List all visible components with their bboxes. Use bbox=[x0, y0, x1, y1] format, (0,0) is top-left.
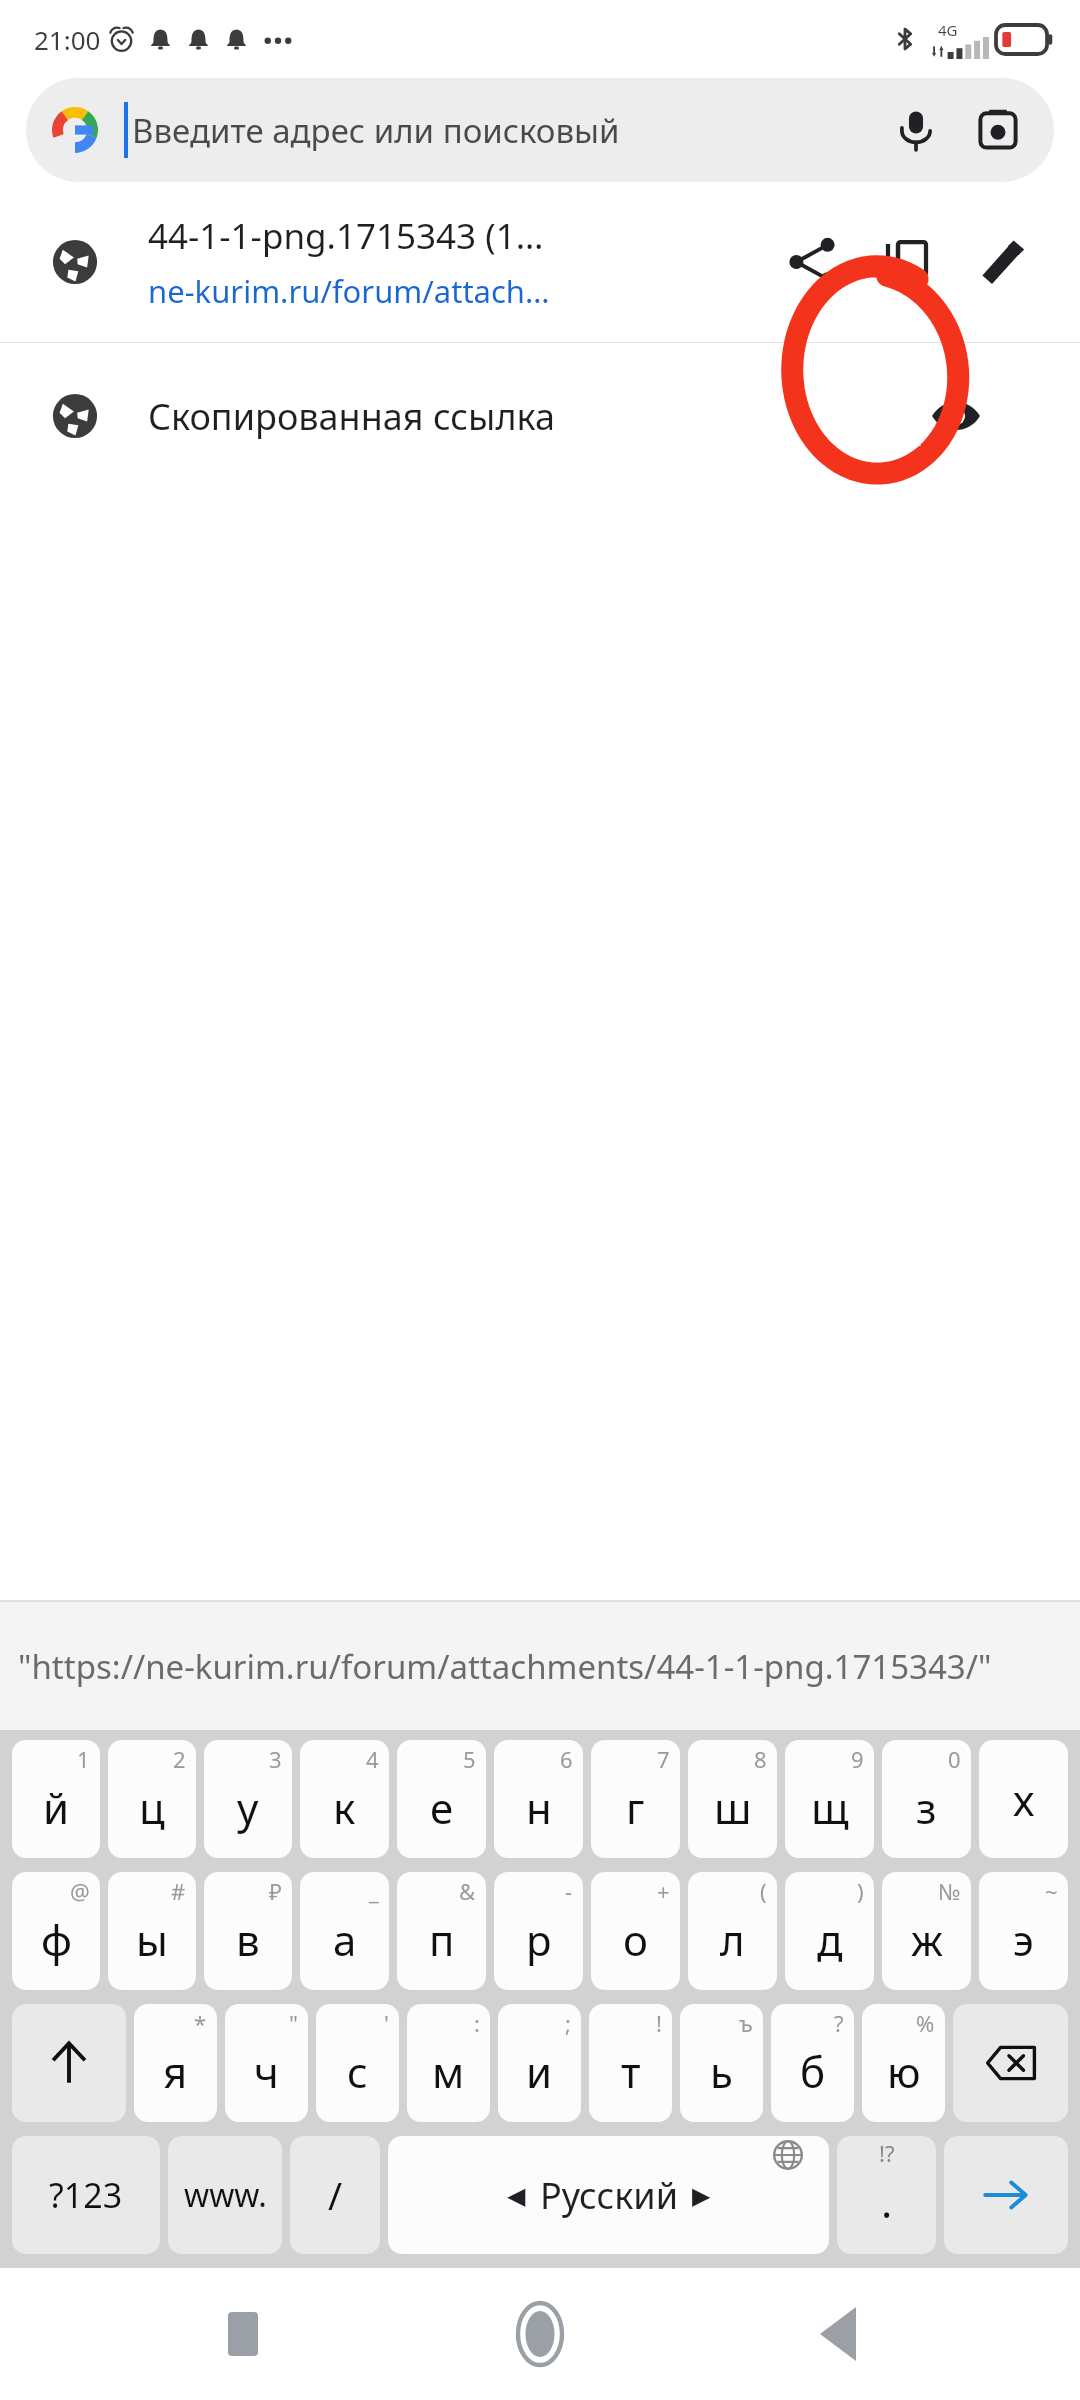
staticText: . bbox=[881, 2173, 893, 2230]
button[interactable]: : bbox=[407, 2004, 490, 2122]
staticText: ▶ bbox=[692, 2182, 711, 2210]
staticText: @ bbox=[70, 1876, 90, 1906]
staticText: Введите адрес или поисковый bbox=[132, 108, 878, 153]
staticText: г bbox=[626, 1779, 645, 1836]
button[interactable]: Скопированная ссылка bbox=[0, 343, 1080, 489]
staticText: Русский bbox=[540, 2171, 678, 2220]
button[interactable]: ' bbox=[316, 2004, 399, 2122]
staticText: ₽ bbox=[269, 1876, 282, 1906]
button[interactable]: Поиск по картинке bbox=[968, 100, 1028, 160]
staticText: _ bbox=[369, 1876, 379, 1906]
staticText: 3 bbox=[269, 1744, 282, 1774]
button[interactable]: 0 bbox=[882, 1740, 971, 1858]
staticText: : bbox=[474, 2008, 480, 2038]
staticText: ' bbox=[384, 2008, 389, 2038]
staticText: н bbox=[526, 1779, 552, 1836]
staticText: % bbox=[916, 2008, 935, 2038]
button[interactable]: # bbox=[108, 1872, 196, 1990]
button[interactable]: Поделиться bbox=[764, 214, 860, 310]
button[interactable]: * bbox=[134, 2004, 217, 2122]
staticText: й bbox=[43, 1779, 70, 1836]
staticText: м bbox=[432, 2043, 465, 2100]
staticText: ш bbox=[714, 1779, 752, 1836]
button[interactable]: Назад bbox=[783, 2279, 893, 2389]
button[interactable]: ~ bbox=[979, 1872, 1068, 1990]
staticText: э bbox=[1013, 1911, 1034, 1968]
button[interactable]: ? bbox=[771, 2004, 854, 2122]
button[interactable]: " bbox=[225, 2004, 308, 2122]
button[interactable]: ◀ bbox=[388, 2136, 829, 2254]
button[interactable]: + bbox=[591, 1872, 680, 1990]
button[interactable]: Перейти bbox=[944, 2136, 1068, 2254]
staticText: ; bbox=[565, 2008, 571, 2038]
button[interactable]: Введите адрес или поисковый bbox=[26, 78, 1054, 182]
button[interactable]: 7 bbox=[591, 1740, 680, 1858]
staticText: и bbox=[526, 2043, 553, 2100]
staticText: ! bbox=[656, 2008, 662, 2038]
button[interactable]: "https://ne-kurim.ru/forum/attachments/4… bbox=[0, 1602, 1080, 1730]
staticText: д bbox=[817, 1911, 843, 1968]
button[interactable]: & bbox=[397, 1872, 486, 1990]
staticText: 4 bbox=[366, 1744, 379, 1774]
button[interactable]: 2 bbox=[108, 1740, 196, 1858]
button[interactable]: 44-1-1-png.1715343 (1… bbox=[0, 182, 1080, 342]
button[interactable]: 4 bbox=[300, 1740, 389, 1858]
staticText: у bbox=[237, 1779, 259, 1836]
staticText: п bbox=[429, 1911, 455, 1968]
button[interactable]: ₽ bbox=[204, 1872, 292, 1990]
button[interactable]: % bbox=[862, 2004, 945, 2122]
button[interactable]: ?123 bbox=[12, 2136, 160, 2254]
button[interactable]: Копировать bbox=[860, 214, 956, 310]
staticText: ~ bbox=[1045, 1876, 1058, 1906]
staticText: в bbox=[236, 1911, 260, 1968]
button[interactable]: 5 bbox=[397, 1740, 486, 1858]
staticText: ф bbox=[41, 1911, 72, 1968]
button[interactable]: ! bbox=[589, 2004, 672, 2122]
button[interactable]: Показать bbox=[908, 368, 1004, 464]
button[interactable]: www. bbox=[168, 2136, 282, 2254]
button[interactable]: Shift bbox=[12, 2004, 126, 2122]
button[interactable]: @ bbox=[12, 1872, 100, 1990]
button[interactable]: _ bbox=[300, 1872, 389, 1990]
button[interactable]: Недавние bbox=[188, 2279, 298, 2389]
button[interactable]: / bbox=[290, 2136, 380, 2254]
staticText: 8 bbox=[754, 1744, 767, 1774]
staticText: т bbox=[621, 2043, 641, 2100]
button[interactable]: х bbox=[979, 1740, 1068, 1858]
staticText: Скопированная ссылка bbox=[148, 392, 555, 441]
staticText: с bbox=[347, 2043, 368, 2100]
button[interactable]: 9 bbox=[785, 1740, 874, 1858]
button[interactable]: Удалить bbox=[953, 2004, 1068, 2122]
staticText: ◀ bbox=[507, 2182, 526, 2210]
staticText: ц bbox=[139, 1779, 165, 1836]
staticText: # bbox=[171, 1876, 186, 1906]
button[interactable]: ( bbox=[688, 1872, 777, 1990]
button[interactable]: ) bbox=[785, 1872, 874, 1990]
button[interactable]: 3 bbox=[204, 1740, 292, 1858]
staticText: е bbox=[430, 1779, 454, 1836]
staticText: - bbox=[565, 1876, 573, 1906]
staticText: р bbox=[526, 1911, 552, 1968]
staticText: 5 bbox=[463, 1744, 476, 1774]
staticText: ? bbox=[834, 2008, 844, 2038]
staticText: "https://ne-kurim.ru/forum/attachments/4… bbox=[18, 1644, 992, 1689]
staticText: б bbox=[800, 2043, 826, 2100]
staticText: ) bbox=[857, 1876, 864, 1906]
staticText: 1 bbox=[77, 1744, 90, 1774]
staticText: www. bbox=[184, 2173, 267, 2217]
staticText: ж bbox=[911, 1911, 943, 1968]
staticText: & bbox=[459, 1876, 476, 1906]
button[interactable]: Голосовой поиск bbox=[886, 100, 946, 160]
button[interactable]: ; bbox=[498, 2004, 581, 2122]
staticText: 4G bbox=[938, 20, 958, 40]
button[interactable]: № bbox=[882, 1872, 971, 1990]
button[interactable]: ъ bbox=[680, 2004, 763, 2122]
button[interactable]: 8 bbox=[688, 1740, 777, 1858]
button[interactable]: Изменить bbox=[956, 214, 1052, 310]
button[interactable]: 1 bbox=[12, 1740, 100, 1858]
button[interactable]: - bbox=[494, 1872, 583, 1990]
button[interactable]: 6 bbox=[494, 1740, 583, 1858]
button[interactable]: Главный экран bbox=[485, 2279, 595, 2389]
button[interactable]: !? bbox=[837, 2136, 936, 2254]
staticText: ( bbox=[760, 1876, 767, 1906]
